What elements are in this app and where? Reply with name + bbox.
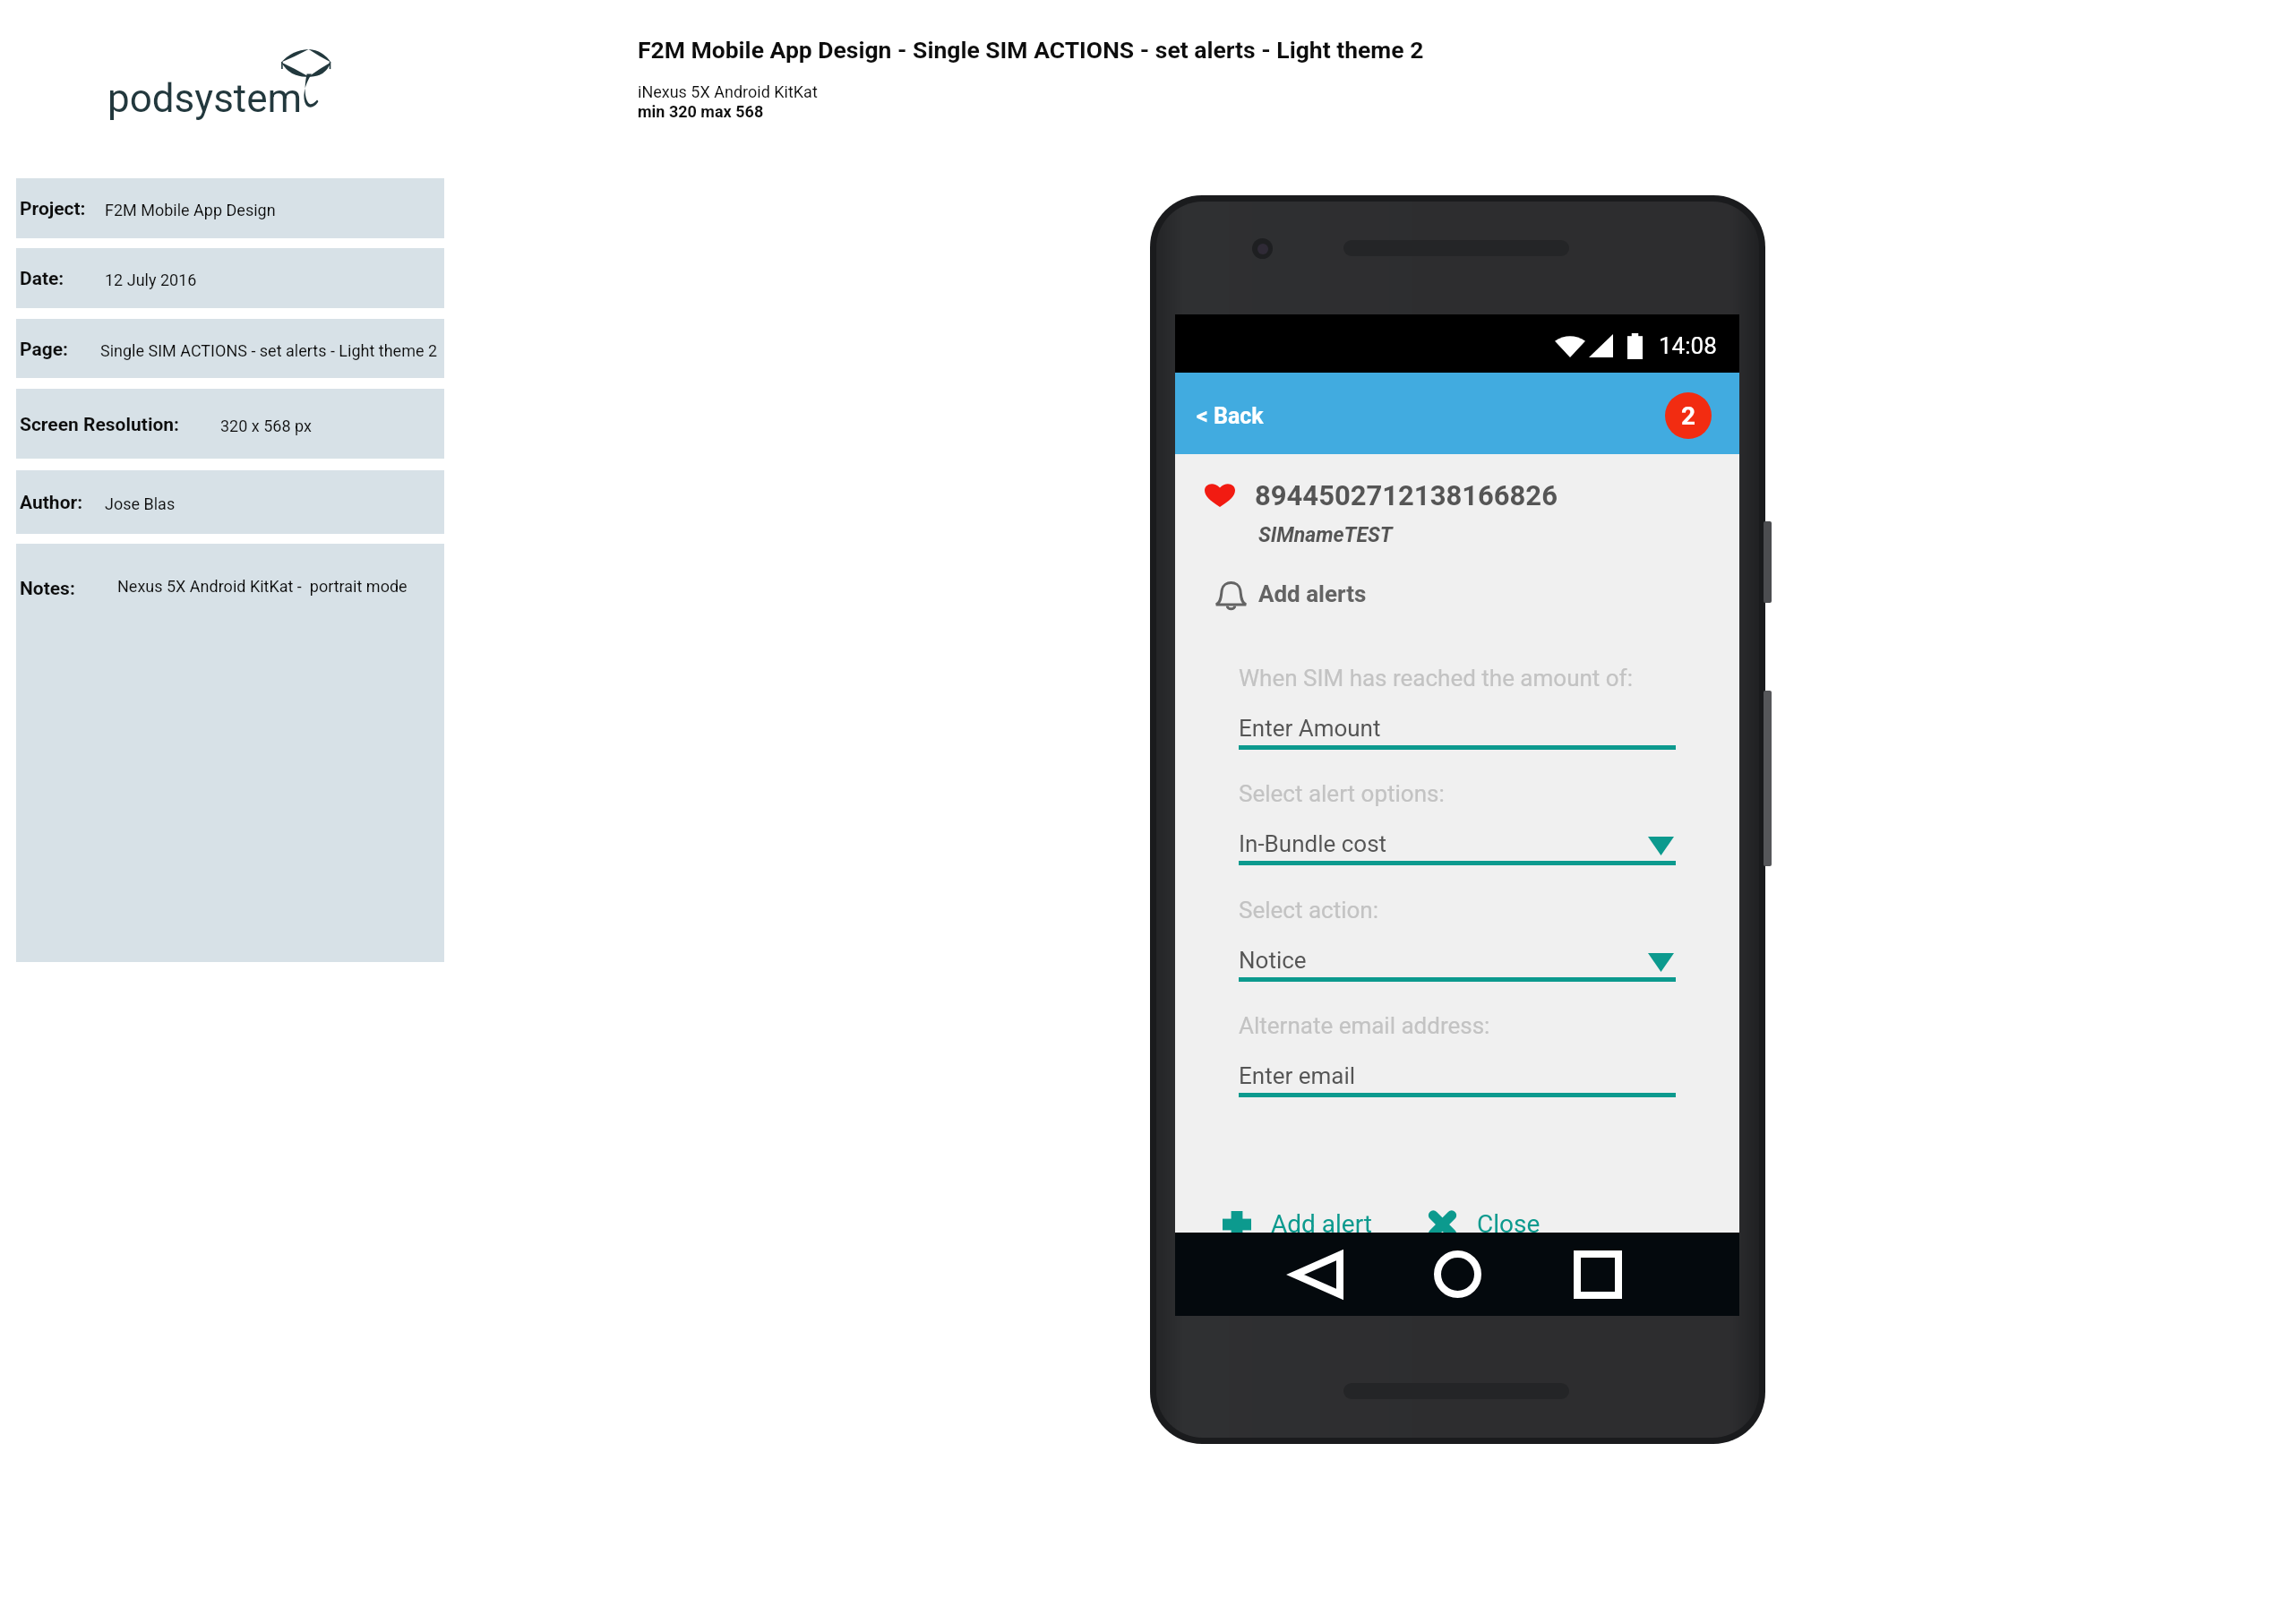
- button[interactable]: Screen Resolution:: [16, 389, 444, 459]
- button[interactable]: Date:: [16, 248, 444, 308]
- button[interactable]: Notes:: [16, 544, 444, 962]
- staticText: In-Bundle cost: [1239, 830, 1387, 857]
- staticText: Author:: [20, 492, 83, 514]
- button[interactable]: Close: [1421, 1199, 1555, 1242]
- staticText: min 320 max 568: [638, 102, 764, 121]
- staticText: Enter email: [1239, 1062, 1356, 1089]
- button[interactable]: Recent apps: [1562, 1239, 1633, 1310]
- button[interactable]: Alternate email address:: [1239, 1008, 1676, 1035]
- button[interactable]: Select action:: [1239, 892, 1676, 919]
- staticText: 12 July 2016: [105, 271, 197, 289]
- staticText: Project:: [20, 198, 86, 220]
- staticText: Page:: [20, 339, 68, 361]
- staticText: Notes:: [20, 578, 75, 600]
- staticText: F2M Mobile App Design - Single SIM ACTIO…: [638, 36, 1424, 64]
- button[interactable]: Page:: [16, 319, 444, 378]
- staticText: Enter Amount: [1239, 715, 1381, 742]
- button[interactable]: When SIM has reached the amount of:: [1239, 660, 1676, 687]
- button[interactable]: Back: [1282, 1239, 1352, 1310]
- button[interactable]: Author:: [16, 470, 444, 534]
- staticText: Notice: [1239, 947, 1307, 974]
- staticText: Add alerts: [1258, 580, 1367, 607]
- staticText: Add alert: [1271, 1209, 1373, 1239]
- staticText: 2: [1681, 401, 1696, 431]
- staticText: podsystem: [107, 75, 303, 122]
- staticText: Single SIM ACTIONS - set alerts - Light …: [100, 341, 438, 360]
- staticText: Jose Blas: [105, 494, 176, 513]
- button[interactable]: < Back: [1175, 390, 1280, 437]
- staticText: Alternate email address:: [1239, 1012, 1490, 1039]
- staticText: Nexus 5X Android KitKat - portrait mode: [117, 577, 408, 596]
- button[interactable]: Add alert: [1175, 1199, 1387, 1242]
- staticText: 320 x 568 px: [220, 417, 312, 435]
- staticText: Select alert options:: [1239, 780, 1445, 807]
- button[interactable]: Add alerts: [1175, 571, 1383, 615]
- button[interactable]: Project:: [16, 178, 444, 238]
- staticText: < Back: [1197, 403, 1264, 429]
- button[interactable]: Home: [1422, 1239, 1493, 1310]
- button[interactable]: Select alert options:: [1239, 776, 1676, 803]
- staticText: Close: [1477, 1209, 1541, 1239]
- staticText: Screen Resolution:: [20, 414, 179, 436]
- staticText: iNexus 5X Android KitKat: [638, 82, 818, 101]
- staticText: Select action:: [1239, 897, 1378, 924]
- staticText: SIMnameTEST: [1258, 523, 1393, 547]
- button[interactable]: Notifications: 2: [1665, 392, 1712, 439]
- staticText: 14:08: [1659, 332, 1717, 359]
- staticText: F2M Mobile App Design: [105, 201, 276, 219]
- staticText: When SIM has reached the amount of:: [1239, 665, 1633, 692]
- staticText: 8944502712138166826: [1255, 479, 1558, 511]
- staticText: Date:: [20, 268, 64, 290]
